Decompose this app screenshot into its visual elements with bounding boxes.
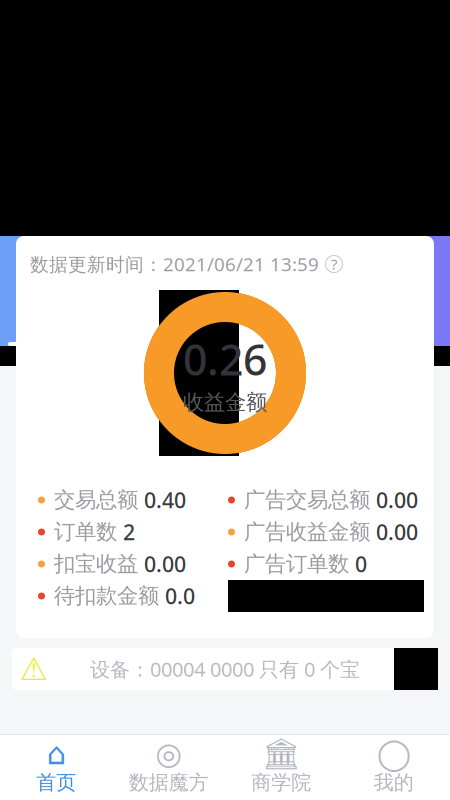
staticText: ⌂ [47, 736, 66, 771]
staticText: 待扣款金额 [54, 583, 159, 609]
staticText: ◯ [377, 736, 411, 771]
staticText: 0.40 [144, 486, 186, 514]
staticText: 🏛 [262, 736, 301, 771]
button[interactable]: ◎ [112, 735, 225, 800]
button[interactable]: ⌂ [0, 735, 112, 800]
button[interactable]: 🏛 [225, 735, 337, 800]
staticText: 收益金额 [183, 389, 267, 415]
staticText: ⚠ [19, 651, 48, 687]
staticText: 0.00 [376, 486, 418, 514]
staticText: 订单数 [54, 519, 117, 545]
staticText: 0 [355, 550, 367, 578]
staticText: 数据更新时间：2021/06/21 13:59 [30, 252, 319, 276]
staticText: 0.26 [183, 331, 267, 387]
staticText: 广告收益金额 [244, 519, 370, 545]
staticText: 本周 [198, 299, 252, 331]
staticText: 广告订单数 [244, 551, 349, 577]
staticText: 数据魔方 [129, 770, 209, 795]
staticText: 首页 [36, 770, 76, 795]
staticText: 商学院 [251, 770, 311, 795]
button[interactable]: 说明 [319, 250, 349, 278]
button[interactable]: 本周 [150, 298, 300, 332]
button[interactable]: ⚠ [12, 648, 438, 690]
staticText: 交易总额 [54, 487, 138, 513]
staticText: ? [331, 254, 337, 274]
staticText: 设备：00004 0000 只有 0 个宝 [90, 656, 360, 682]
button[interactable]: ◯ [337, 735, 450, 800]
staticText: 0.00 [144, 550, 186, 578]
staticText: ◎ [155, 736, 182, 771]
staticText: 扣宝收益 [54, 551, 138, 577]
staticText: 0.0 [165, 582, 195, 610]
staticText: 2 [123, 518, 135, 546]
button[interactable]: 本月 [300, 298, 450, 332]
button[interactable]: 今天 [0, 298, 150, 332]
staticText: 广告交易总额 [244, 487, 370, 513]
staticText: 0.00 [376, 518, 418, 546]
staticText: 我的 [374, 770, 414, 795]
